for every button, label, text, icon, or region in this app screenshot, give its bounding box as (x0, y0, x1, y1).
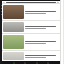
button[interactable]: Browse (24, 62, 26, 64)
button[interactable] (2, 21, 60, 33)
button[interactable]: Home (13, 62, 15, 64)
button[interactable] (2, 51, 60, 61)
button[interactable]: Saved (36, 62, 38, 64)
button[interactable]: Search (57, 2, 59, 4)
button[interactable]: Profile (47, 62, 49, 64)
button[interactable] (2, 4, 60, 20)
button[interactable] (2, 34, 60, 50)
button[interactable]: Menu (3, 2, 5, 4)
